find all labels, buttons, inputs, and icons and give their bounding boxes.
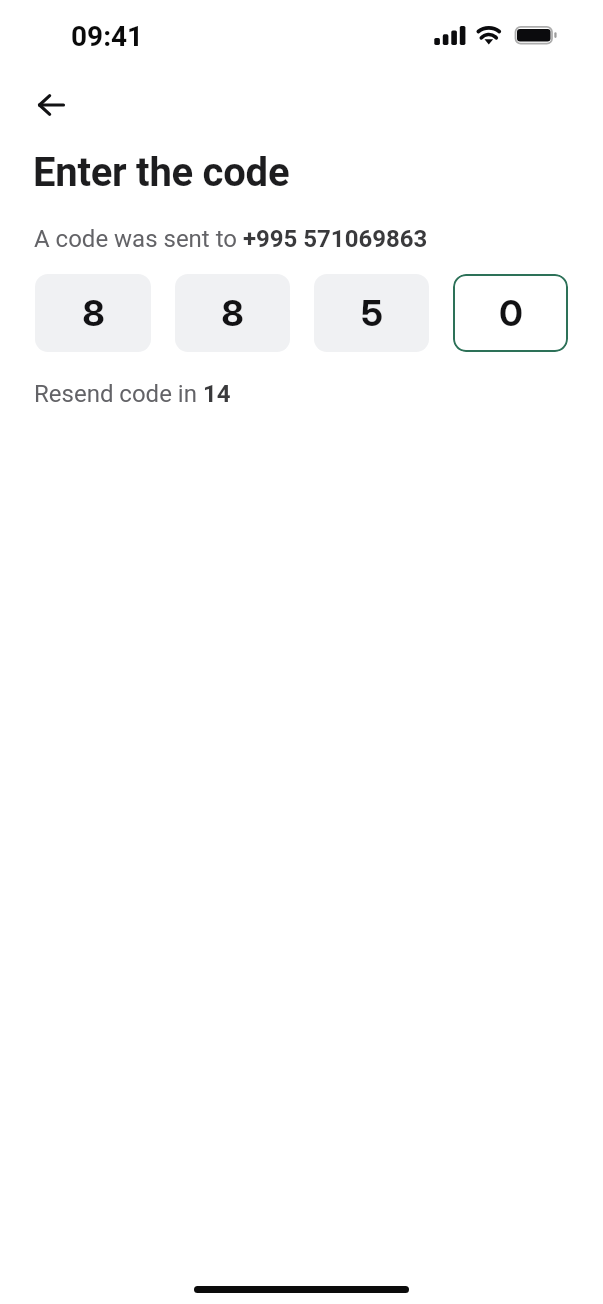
button[interactable]: 8 [175, 274, 290, 352]
staticText: Resend code in 14 [34, 380, 231, 408]
staticText: 5 [361, 291, 383, 335]
button[interactable]: 8 [35, 274, 151, 352]
staticText: 8 [221, 291, 244, 335]
button[interactable]: 5 [314, 274, 429, 352]
button[interactable]: 0 [453, 274, 568, 352]
staticText: 0 [499, 291, 523, 335]
button[interactable]: Back [23, 77, 79, 133]
staticText: A code was sent to +995 571069863 [34, 225, 428, 253]
staticText: 8 [82, 291, 105, 335]
staticText: 09:41 [71, 20, 144, 53]
staticText: Enter the code [33, 149, 290, 196]
